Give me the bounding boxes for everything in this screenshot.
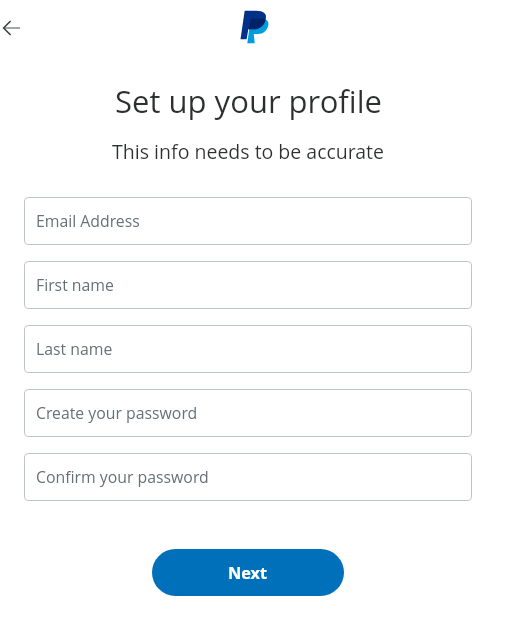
button[interactable]: Create your password — [24, 389, 472, 437]
staticText: This info needs to be accurate — [112, 138, 384, 165]
staticText: Create your password — [36, 402, 198, 424]
button[interactable]: First name — [24, 261, 472, 309]
staticText: Last name — [36, 338, 113, 360]
button[interactable]: Next — [152, 549, 344, 596]
staticText: Email Address — [36, 210, 140, 232]
staticText: Set up your profile — [115, 80, 382, 122]
staticText: Confirm your password — [36, 466, 209, 488]
staticText: Next — [228, 562, 268, 584]
staticText: First name — [36, 274, 114, 296]
button[interactable]: Back — [0, 8, 31, 48]
button[interactable]: Last name — [24, 325, 472, 373]
button[interactable]: Confirm your password — [24, 453, 472, 501]
button[interactable]: Email Address — [24, 197, 472, 245]
